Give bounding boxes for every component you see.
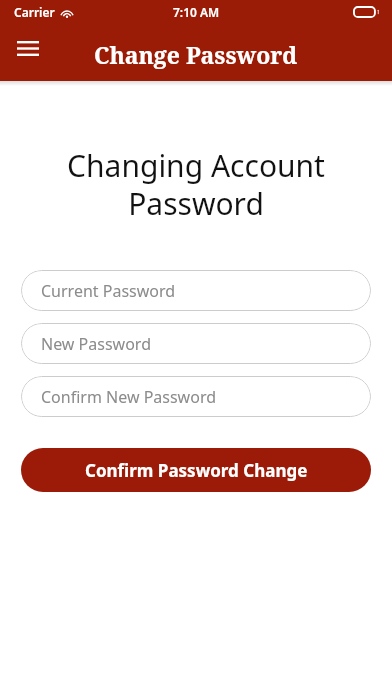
- button[interactable]: Current Password: [21, 270, 371, 311]
- button[interactable]: Confirm Password Change: [21, 448, 371, 492]
- staticText: Carrier: [14, 4, 55, 20]
- staticText: Confirm New Password: [41, 386, 217, 408]
- button[interactable]: Menu: [10, 33, 46, 63]
- button[interactable]: Confirm New Password: [21, 376, 371, 417]
- staticText: Confirm Password Change: [85, 459, 308, 482]
- staticText: New Password: [41, 333, 151, 355]
- button[interactable]: New Password: [21, 323, 371, 364]
- staticText: Changing Account Password: [36, 145, 356, 224]
- staticText: Current Password: [41, 280, 176, 302]
- staticText: 7:10 AM: [173, 4, 220, 20]
- staticText: Change Password: [94, 39, 298, 70]
